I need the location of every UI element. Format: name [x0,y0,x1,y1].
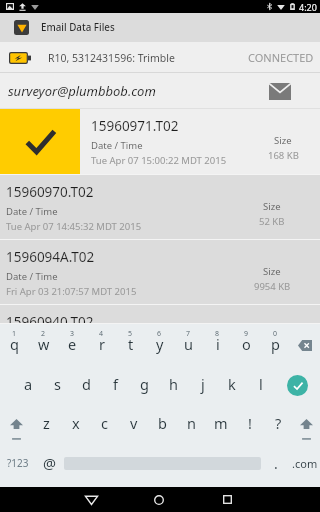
staticText: y [156,334,164,354]
button[interactable]: ? [264,406,293,447]
staticText: Date / Time [6,270,58,283]
staticText: 1 [12,329,17,339]
button[interactable]: h [159,365,188,406]
staticText: 1596094A.T02 [6,248,95,266]
button[interactable]: 1596094A.T02 [0,240,320,305]
staticText: p [271,334,280,354]
staticText: d [82,374,91,394]
button[interactable]: x [61,406,90,447]
button[interactable]: n [177,406,206,447]
staticText: u [184,334,193,354]
button[interactable]: 9 [232,324,261,365]
staticText: 15960970.T02 [6,183,94,201]
button[interactable]: 0 [261,324,290,365]
staticText: 168 KB [268,149,299,162]
staticText: 8 [215,329,220,339]
staticText: Fri Apr 03 21:07:57 MDT 2015 [6,285,137,298]
button[interactable]: Home [125,487,193,512]
button[interactable]: 5 [116,324,145,365]
button[interactable]: Space [64,443,261,483]
button[interactable]: d [72,365,101,406]
staticText: h [169,374,178,394]
staticText: 9954 KB [254,280,291,293]
staticText: k [228,374,236,394]
staticText: x [72,413,80,433]
staticText: .com [292,456,318,471]
button[interactable]: f [101,365,130,406]
button[interactable]: 6 [145,324,174,365]
button[interactable]: Recents [193,487,261,512]
button[interactable]: ! [235,406,264,447]
staticText: 15960971.T02 [91,117,179,135]
staticText: n [187,413,196,433]
staticText: c [101,413,108,433]
button[interactable]: 8 [203,324,232,365]
button[interactable]: a [14,365,43,406]
staticText: CONNECTED [248,50,314,65]
button[interactable]: Shift [293,406,320,447]
staticText: e [68,334,77,354]
button[interactable]: . [261,443,290,483]
staticText: s [54,374,61,394]
staticText: @ [43,453,57,473]
button[interactable]: R10, 5312431596: Trimble [0,42,320,73]
staticText: 15960940.T02 [6,313,94,324]
button[interactable]: g [130,365,159,406]
button[interactable]: Enter [275,365,320,406]
button[interactable]: 4 [87,324,116,365]
button[interactable]: j [188,365,217,406]
button[interactable]: s [43,365,72,406]
button[interactable]: 7 [174,324,203,365]
button[interactable]: v [119,406,148,447]
button[interactable]: Back [57,487,125,512]
staticText: l [259,374,263,394]
staticText: g [140,374,149,394]
staticText: ? [275,413,282,433]
button[interactable]: 15960940.T02 [0,305,320,324]
staticText: m [214,413,228,433]
staticText: 3 [70,329,75,339]
staticText: Tue Apr 07 15:00:22 MDT 2015 [91,154,227,167]
staticText: f [113,374,118,394]
button[interactable]: Backspace [290,324,320,365]
staticText: R10, 5312431596: Trimble [48,51,175,65]
staticText: 4 [99,329,104,339]
button[interactable]: 15960970.T02 [0,175,320,240]
button[interactable]: .com [290,443,320,483]
button[interactable]: @ [36,443,64,483]
button[interactable]: 2 [29,324,58,365]
staticText: 5 [128,329,133,339]
button[interactable]: 15960971.T02 [0,109,320,175]
staticText: Size [263,200,281,213]
button[interactable]: z [32,406,61,447]
button[interactable]: ?123 [0,443,36,483]
staticText: 4:20 [299,1,317,13]
staticText: r [99,334,105,354]
button[interactable]: 1 [0,324,29,365]
staticText: ! [248,413,252,433]
staticText: 9 [244,329,249,339]
staticText: w [38,334,50,354]
staticText: i [216,334,220,354]
staticText: 7 [186,329,191,339]
staticText: Date / Time [91,139,143,152]
button[interactable]: m [206,406,235,447]
staticText: q [10,334,19,354]
staticText: t [128,334,134,354]
button[interactable]: Send email [265,76,295,106]
button[interactable]: k [217,365,246,406]
staticText: b [158,413,167,433]
button[interactable]: b [148,406,177,447]
button[interactable]: l [246,365,275,406]
staticText: a [24,374,33,394]
staticText: Date / Time [6,205,58,218]
staticText: surveyor@plumbbob.com [8,82,156,100]
button[interactable]: Shift [0,406,32,447]
button[interactable]: 3 [58,324,87,365]
staticText: ?123 [7,456,29,470]
button[interactable]: c [90,406,119,447]
staticText: v [130,413,138,433]
staticText: 6 [157,329,162,339]
staticText: o [242,334,251,354]
staticText: Size [263,265,281,278]
